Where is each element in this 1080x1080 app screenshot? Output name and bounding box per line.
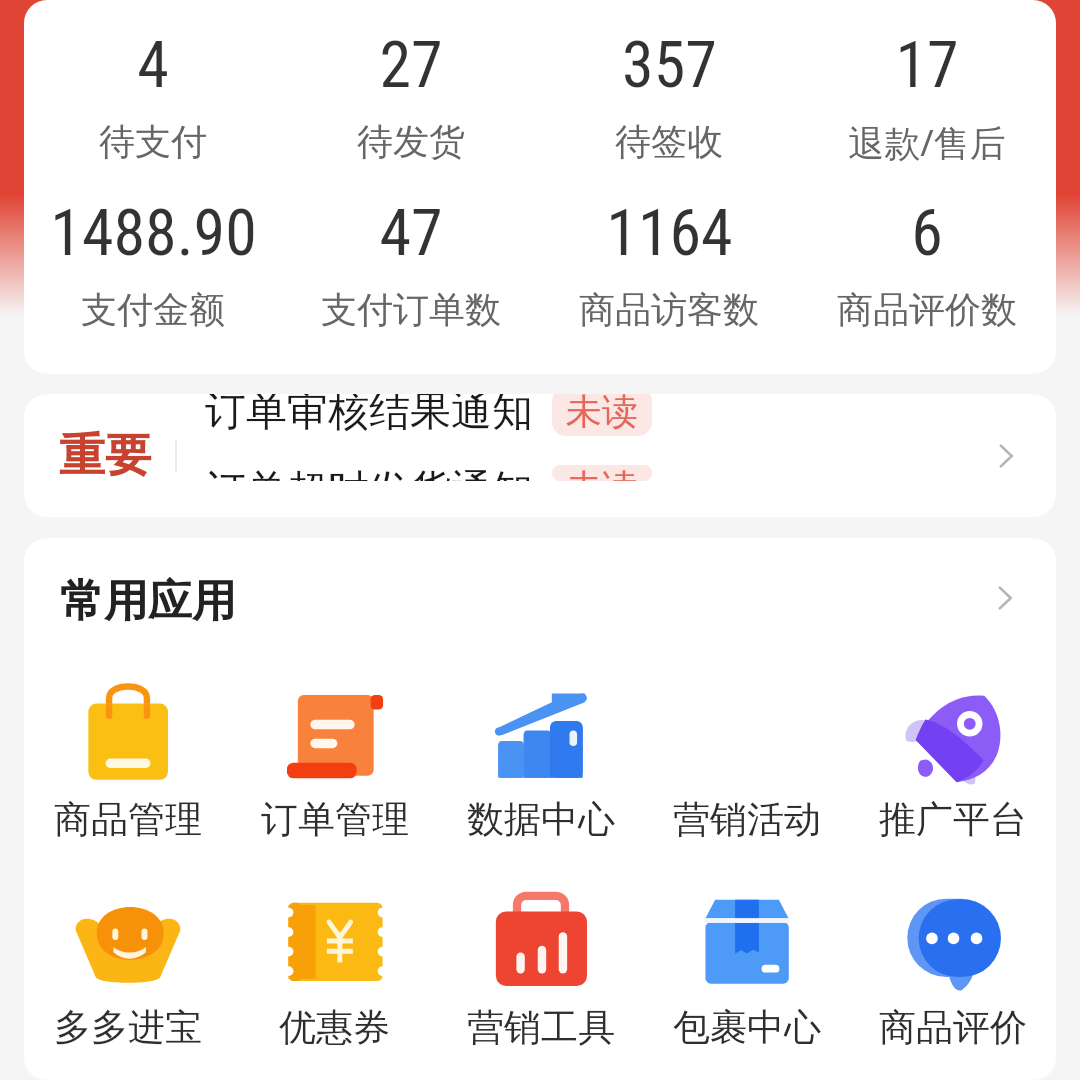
- staticText: 包裹中心: [673, 1004, 821, 1051]
- button[interactable]: 1488.90: [24, 196, 282, 332]
- staticText: 6: [911, 196, 943, 258]
- button[interactable]: 包裹中心: [644, 887, 850, 1051]
- staticText: 待支付: [99, 119, 207, 164]
- staticText: 47: [379, 196, 443, 258]
- staticText: 商品访客数: [579, 287, 759, 332]
- button[interactable]: 商品评价: [850, 887, 1056, 1051]
- staticText: 待发货: [357, 119, 465, 164]
- staticText: 营销工具: [467, 1004, 615, 1051]
- staticText: 数据中心: [467, 796, 615, 843]
- button[interactable]: 1164: [540, 196, 798, 332]
- staticText: 订单审核结果通知: [205, 394, 533, 438]
- staticText: 4: [137, 28, 169, 90]
- staticText: 常用应用: [60, 574, 236, 629]
- button[interactable]: 重要: [24, 394, 1056, 517]
- button[interactable]: 订单管理: [231, 679, 438, 843]
- button[interactable]: 优惠券: [231, 887, 438, 1051]
- staticText: 357: [622, 28, 717, 90]
- staticText: 1488.90: [50, 196, 257, 258]
- staticText: 17: [895, 28, 959, 90]
- button[interactable]: 多多进宝: [24, 887, 231, 1051]
- staticText: 未读: [566, 394, 638, 434]
- button[interactable]: 27: [282, 28, 540, 164]
- button[interactable]: 4: [24, 28, 282, 164]
- staticText: 优惠券: [279, 1004, 390, 1051]
- staticText: 支付订单数: [321, 287, 501, 332]
- staticText: 营销活动: [673, 796, 821, 843]
- button[interactable]: 357: [540, 28, 798, 164]
- staticText: 支付金额: [81, 287, 225, 332]
- button[interactable]: 营销工具: [438, 887, 644, 1051]
- button[interactable]: 商品管理: [24, 679, 231, 843]
- button[interactable]: 数据中心: [438, 679, 644, 843]
- staticText: 退款/售后: [848, 118, 1006, 164]
- button[interactable]: 17: [798, 28, 1056, 164]
- staticText: 商品管理: [54, 796, 202, 843]
- staticText: 多多进宝: [54, 1004, 202, 1051]
- button[interactable]: 推广平台: [850, 679, 1056, 843]
- staticText: 待签收: [615, 119, 723, 164]
- other: 查看通知: [993, 443, 1019, 469]
- staticText: 推广平台: [879, 796, 1027, 843]
- staticText: 订单管理: [261, 796, 409, 843]
- button[interactable]: 6: [798, 196, 1056, 332]
- staticText: 27: [379, 28, 443, 90]
- staticText: 未读: [566, 465, 638, 481]
- button[interactable]: 营销活动: [644, 679, 850, 843]
- other: 更多常用应用: [992, 585, 1018, 611]
- staticText: 订单超时发货通知: [205, 465, 533, 481]
- button[interactable]: 常用应用: [24, 538, 1056, 643]
- staticText: 1164: [606, 196, 733, 258]
- button[interactable]: 47: [282, 196, 540, 332]
- staticText: 重要: [59, 427, 151, 485]
- staticText: 商品评价数: [837, 287, 1017, 332]
- staticText: 商品评价: [879, 1004, 1027, 1051]
